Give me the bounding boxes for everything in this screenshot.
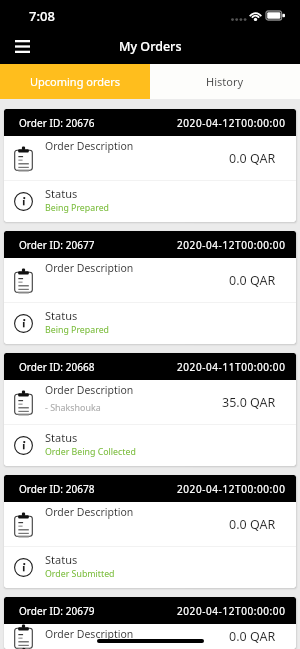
staticText: 0.0 QAR	[229, 272, 276, 289]
staticText: Status	[45, 186, 78, 201]
button[interactable]: Order ID: 20677	[4, 231, 296, 344]
staticText: 35.0 QAR	[222, 394, 276, 411]
staticText: Order ID: 20677	[19, 238, 95, 252]
staticText: Status	[45, 430, 78, 445]
staticText: 0.0 QAR	[229, 628, 276, 645]
staticText: Order Description	[45, 383, 134, 397]
staticText: Order Description	[45, 261, 134, 275]
staticText: Order ID: 20676	[19, 116, 95, 130]
staticText: Order Being Collected	[45, 446, 136, 458]
staticText: 2020-04-12T00:00:00	[177, 116, 286, 130]
button[interactable]: Order ID: 20676	[4, 109, 296, 222]
button[interactable]: Order ID: 20679	[4, 597, 296, 649]
staticText: Order ID: 20679	[19, 604, 95, 618]
staticText: Order Description	[45, 627, 134, 641]
staticText: 0.0 QAR	[229, 516, 276, 533]
staticText: History	[206, 74, 244, 89]
button[interactable]: Upcoming orders	[0, 64, 150, 99]
staticText: Being Prepared	[45, 324, 109, 336]
staticText: Upcoming orders	[30, 74, 121, 89]
button[interactable]: Menu	[4, 28, 40, 64]
staticText: My Orders	[119, 38, 182, 55]
staticText: Order ID: 20668	[19, 360, 95, 374]
staticText: 7:08	[29, 7, 55, 25]
staticText: Status	[45, 552, 78, 567]
staticText: 2020-04-12T00:00:00	[177, 604, 286, 618]
button[interactable]: Order ID: 20668	[4, 353, 296, 466]
button[interactable]: History	[150, 64, 300, 99]
staticText: Order Description	[45, 505, 134, 519]
staticText: Order Submitted	[45, 568, 115, 580]
staticText: 2020-04-12T00:00:00	[177, 238, 286, 252]
staticText: Order Description	[45, 139, 134, 153]
staticText: Being Prepared	[45, 202, 109, 214]
button[interactable]: Order ID: 20678	[4, 475, 296, 588]
staticText: Order ID: 20678	[19, 482, 95, 496]
staticText: 2020-04-12T00:00:00	[177, 482, 286, 496]
staticText: 2020-04-11T00:00:00	[177, 360, 286, 374]
staticText: 0.0 QAR	[229, 150, 276, 167]
staticText: Status	[45, 308, 78, 323]
staticText: - Shakshouka	[45, 401, 101, 413]
